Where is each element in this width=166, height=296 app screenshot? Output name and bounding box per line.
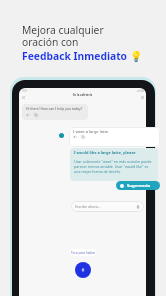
staticText: I would like a large latte, please [74, 150, 136, 155]
staticText: 9:41 [22, 89, 28, 93]
button[interactable]: Menú [138, 93, 146, 102]
staticText: Usar solamente "want" en más ocasión pue… [74, 159, 154, 174]
staticText: Escribe ahora... [75, 204, 101, 209]
button[interactable]: Sugerencia [116, 181, 160, 190]
button[interactable]: I would like a large latte, please [70, 148, 158, 181]
staticText: Hi there! How can I help you today? [26, 106, 83, 111]
staticText: Feedback Inmediato 💡 [22, 49, 143, 63]
staticText: oración con [22, 35, 79, 49]
staticText: En la cafetería [73, 93, 93, 97]
button[interactable]: Escribe ahora... [71, 201, 144, 212]
button[interactable]: Cerrar [19, 93, 28, 102]
staticText: Mejora cualquier [22, 23, 104, 37]
button[interactable]: Hablar [75, 262, 91, 278]
button[interactable]: Hi there! How can I help you today? [22, 104, 88, 120]
staticText: Sugerencia [127, 183, 151, 189]
button[interactable]: Toca para hablar [70, 249, 96, 256]
staticText: I want a large latte. [73, 129, 110, 134]
button[interactable]: I want a large latte. [69, 127, 160, 147]
staticText: Toca para hablar [71, 251, 96, 255]
